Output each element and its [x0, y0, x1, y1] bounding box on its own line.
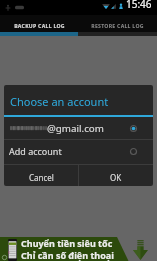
staticText: Add account: [9, 145, 62, 157]
staticText: Choose an account: [10, 94, 109, 109]
button[interactable]: BACKUP CALL LOG: [0, 15, 78, 32]
button[interactable]: RESTORE CALL LOG: [78, 15, 157, 32]
staticText: Chỉ cần số điện thoại: [21, 249, 114, 261]
button[interactable]: Add account: [4, 140, 153, 164]
button[interactable]: OK: [79, 165, 153, 186]
button[interactable]: Chuyển tiền siêu tốc: [0, 237, 157, 261]
staticText: OK: [110, 172, 122, 183]
other: Download: [133, 240, 148, 260]
button[interactable]: @gmail.com: [4, 117, 153, 139]
button[interactable]: Cancel: [4, 165, 78, 186]
staticText: 15:46: [126, 0, 152, 11]
staticText: @gmail.com: [47, 122, 104, 135]
staticText: RESTORE CALL LOG: [91, 22, 144, 29]
staticText: BACKUP CALL LOG: [14, 22, 65, 29]
staticText: Cancel: [29, 172, 54, 183]
staticText: Chuyển tiền siêu tốc: [21, 237, 113, 249]
